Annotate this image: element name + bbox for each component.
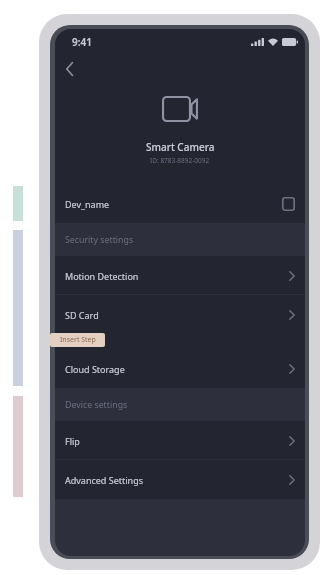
button[interactable]: SD Card	[55, 295, 305, 334]
staticText: Advanced Settings	[65, 474, 143, 486]
button[interactable]: Back	[55, 55, 83, 83]
staticText: Dev_name	[65, 198, 110, 210]
staticText: Device settings	[65, 399, 128, 411]
staticText: Flip	[65, 435, 80, 447]
button[interactable]: Insert Step	[50, 333, 105, 347]
staticText: Smart Camera	[146, 140, 215, 154]
staticText: Cloud Storage	[65, 363, 125, 375]
staticText: Motion Detection	[65, 270, 139, 282]
staticText: 9:41	[72, 35, 92, 49]
staticText: SD Card	[65, 309, 99, 321]
button[interactable]: Motion Detection	[55, 256, 305, 295]
staticText: Insert Step	[60, 335, 96, 345]
button[interactable]: Dev_name	[55, 184, 305, 223]
button[interactable]: Advanced Settings	[55, 460, 305, 499]
button[interactable]: Flip	[55, 421, 305, 460]
staticText: ID: 8783-8892-0092	[150, 156, 210, 165]
button[interactable]: Cloud Storage	[55, 349, 305, 388]
staticText: Security settings	[65, 234, 134, 246]
